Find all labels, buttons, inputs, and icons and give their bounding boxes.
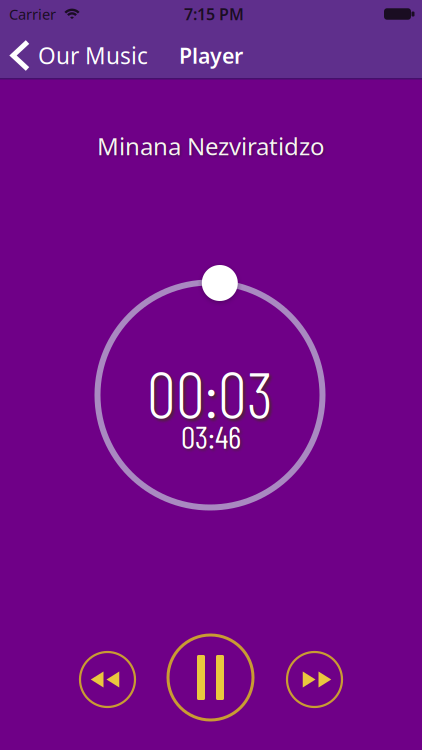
button[interactable]: Fast Forward	[287, 652, 342, 707]
staticText: Player	[179, 41, 243, 70]
staticText: 7:15 PM	[184, 3, 244, 25]
button[interactable]: Pause	[168, 635, 253, 720]
button[interactable]: Rewind	[80, 652, 135, 707]
staticText: Minana Nezviratidzo	[97, 130, 325, 162]
staticText: 03:46	[181, 417, 241, 455]
button[interactable]: Back to Our Music	[10, 39, 148, 71]
staticText: 00:03	[147, 354, 273, 431]
staticText: Carrier	[9, 4, 56, 24]
staticText: Our Music	[38, 40, 148, 70]
